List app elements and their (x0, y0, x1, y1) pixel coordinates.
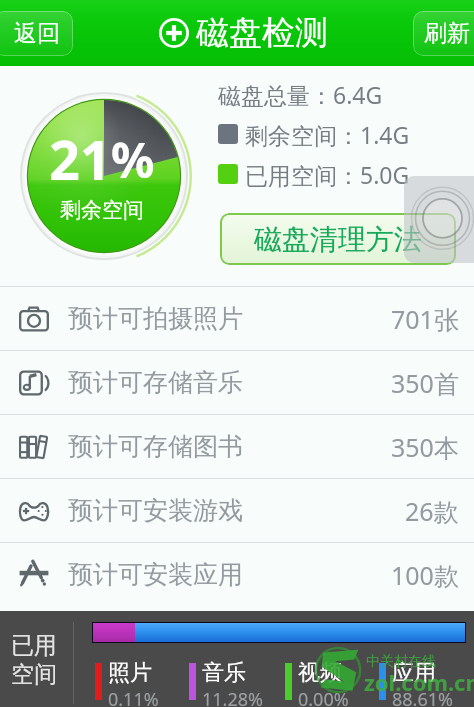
staticText: 预计可安装游戏 (68, 495, 243, 526)
button[interactable]: 应用 (379, 659, 453, 707)
staticText: 预计可存储图书 (68, 431, 243, 462)
staticText: 刷新 (424, 19, 470, 48)
staticText: 空间 (11, 660, 57, 689)
button[interactable]: 预计可拍摄照片 (0, 287, 474, 350)
staticText: % (111, 127, 155, 192)
staticText: 已用空间：5.0G (245, 159, 410, 190)
staticText: 26款 (405, 494, 459, 528)
staticText: 磁盘清理方法 (254, 222, 422, 257)
button[interactable]: 音乐 (189, 659, 263, 707)
staticText: 返回 (14, 19, 60, 48)
staticText: 磁盘总量：6.4G (218, 79, 383, 110)
button[interactable]: 预计可安装游戏 (0, 479, 474, 542)
staticText: zol.com.cn (364, 667, 474, 697)
staticText: 11.28% (202, 687, 263, 707)
staticText: 应用 (392, 659, 436, 687)
staticText: 剩余空间：1.4G (245, 119, 410, 150)
staticText: 701张 (391, 302, 459, 336)
staticText: 视频 (298, 659, 342, 687)
staticText: 音乐 (202, 659, 246, 687)
button[interactable]: 预计可存储音乐 (0, 351, 474, 414)
staticText: 21 (49, 122, 111, 196)
staticText: 350首 (391, 366, 459, 400)
staticText: 0.00% (298, 687, 349, 707)
staticText: 中关村在线 (366, 653, 436, 671)
button[interactable]: 磁盘清理方法 (220, 213, 456, 265)
staticText: 照片 (108, 659, 152, 687)
staticText: 剩余空间 (60, 197, 144, 223)
button[interactable]: 预计可安装应用 (0, 543, 474, 606)
staticText: 0.11% (108, 687, 159, 707)
button[interactable]: 返回 (0, 11, 73, 56)
button[interactable]: 照片 (95, 659, 159, 707)
staticText: 350本 (391, 430, 459, 464)
staticText: 预计可安装应用 (68, 559, 243, 590)
staticText: 已用 (11, 631, 57, 660)
button[interactable]: 刷新 (413, 11, 474, 56)
staticText: 预计可存储音乐 (68, 367, 243, 398)
button[interactable]: 视频 (285, 659, 349, 707)
button[interactable]: 预计可存储图书 (0, 415, 474, 478)
staticText: 88.61% (392, 687, 453, 707)
staticText: 100款 (391, 558, 459, 592)
staticText: 磁盘检测 (196, 12, 328, 54)
button[interactable]: Assistive touch (404, 176, 474, 263)
staticText: 预计可拍摄照片 (68, 303, 243, 334)
